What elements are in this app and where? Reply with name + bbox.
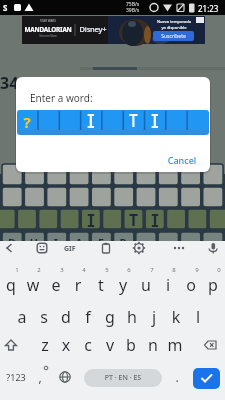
button[interactable]: STAR WARS (22, 16, 205, 44)
staticText: 6 (125, 266, 133, 274)
button[interactable]: p (202, 270, 224, 300)
staticText: r (67, 274, 89, 296)
staticText: 2 (35, 266, 43, 274)
staticText: Nueva temporada (150, 19, 198, 24)
button[interactable]: , (29, 362, 51, 392)
staticText: y (112, 274, 134, 296)
staticText: 34 (0, 72, 19, 94)
button[interactable]: i (157, 270, 179, 300)
button[interactable]: w (22, 270, 44, 300)
staticText: Cancel (162, 154, 202, 166)
button[interactable]: x (55, 330, 77, 360)
button[interactable]: GIF (64, 244, 76, 254)
staticText: U (27, 235, 41, 250)
button[interactable]: g (99, 302, 121, 332)
button[interactable]: m (164, 330, 186, 360)
staticText: v (99, 334, 121, 356)
staticText: S (3, 2, 8, 13)
button[interactable]: o (180, 270, 202, 300)
button[interactable]: b (120, 330, 142, 360)
staticText: j (143, 306, 165, 328)
staticText: x (55, 334, 77, 356)
staticText: 3 (58, 266, 66, 274)
button[interactable]: u (135, 270, 157, 300)
button[interactable]: f (77, 302, 99, 332)
staticText: d (55, 306, 77, 328)
button[interactable]: n (142, 330, 164, 360)
staticText: n (142, 334, 164, 356)
button[interactable] (4, 338, 18, 352)
button[interactable] (206, 241, 220, 255)
staticText: E (94, 235, 108, 250)
staticText: i (157, 274, 179, 296)
button[interactable]: . (166, 362, 188, 392)
staticText: 0 (215, 266, 223, 274)
staticText: z (34, 334, 56, 356)
staticText: q (0, 274, 22, 296)
button[interactable]: h (121, 302, 143, 332)
staticText: l (187, 306, 209, 328)
button[interactable] (58, 370, 72, 384)
staticText: MANDALORIAN (22, 25, 74, 34)
button[interactable] (132, 241, 146, 255)
staticText: c (77, 334, 99, 356)
staticText: k (165, 306, 187, 328)
staticText: 75B/s (126, 1, 140, 8)
button[interactable] (2, 241, 16, 255)
staticText: ya disponible (150, 25, 198, 30)
staticText: s (33, 306, 55, 328)
staticText: Enter a word: (30, 91, 93, 105)
staticText: PT · EN · ES (84, 373, 162, 383)
staticText: h (121, 306, 143, 328)
staticText: 7 (148, 266, 156, 274)
button[interactable]: k (165, 302, 187, 332)
button[interactable]: ?123 (2, 365, 30, 389)
button[interactable] (99, 241, 113, 255)
staticText: p (202, 274, 224, 296)
staticText: g (99, 306, 121, 328)
button[interactable]: Suscríbete (153, 31, 194, 41)
button[interactable]: a (11, 302, 33, 332)
button[interactable] (203, 338, 217, 352)
button[interactable]: Cancel (162, 152, 202, 168)
staticText: a (11, 306, 33, 328)
staticText: t (90, 274, 112, 296)
staticText: f (77, 306, 99, 328)
button[interactable] (172, 241, 186, 255)
staticText: 4 (80, 266, 88, 274)
staticText: , (29, 369, 51, 385)
button[interactable] (35, 241, 49, 255)
button[interactable]: y (112, 270, 134, 300)
button[interactable]: e (45, 270, 67, 300)
staticText: GIF (64, 244, 76, 254)
staticText: b (120, 334, 142, 356)
staticText: 8 (170, 266, 178, 274)
staticText: w (22, 274, 44, 296)
button[interactable]: d (55, 302, 77, 332)
staticText: Suscríbete (153, 33, 194, 40)
staticText: Stream Now (28, 34, 68, 38)
button[interactable]: PT · EN · ES (84, 369, 162, 387)
staticText: 5 (103, 266, 111, 274)
button[interactable]: q (0, 270, 22, 300)
button[interactable]: r (67, 270, 89, 300)
staticText: ? (19, 112, 35, 132)
staticText: D (5, 235, 19, 250)
staticText: 39B/s (126, 7, 140, 14)
button[interactable]: z (34, 330, 56, 360)
button[interactable]: j (143, 302, 165, 332)
staticText: R (116, 235, 130, 250)
button[interactable]: t (90, 270, 112, 300)
button[interactable]: c (77, 330, 99, 360)
staticText: A (72, 235, 86, 250)
button[interactable]: l (187, 302, 209, 332)
button[interactable]: s (33, 302, 55, 332)
button[interactable]: v (99, 330, 121, 360)
staticText: . (166, 369, 188, 385)
staticText: 9 (193, 266, 201, 274)
staticText: I (49, 235, 63, 250)
button[interactable] (193, 368, 220, 389)
staticText: 21:23 (198, 3, 219, 14)
staticText: Disney+ (78, 24, 108, 34)
staticText: o (180, 274, 202, 296)
